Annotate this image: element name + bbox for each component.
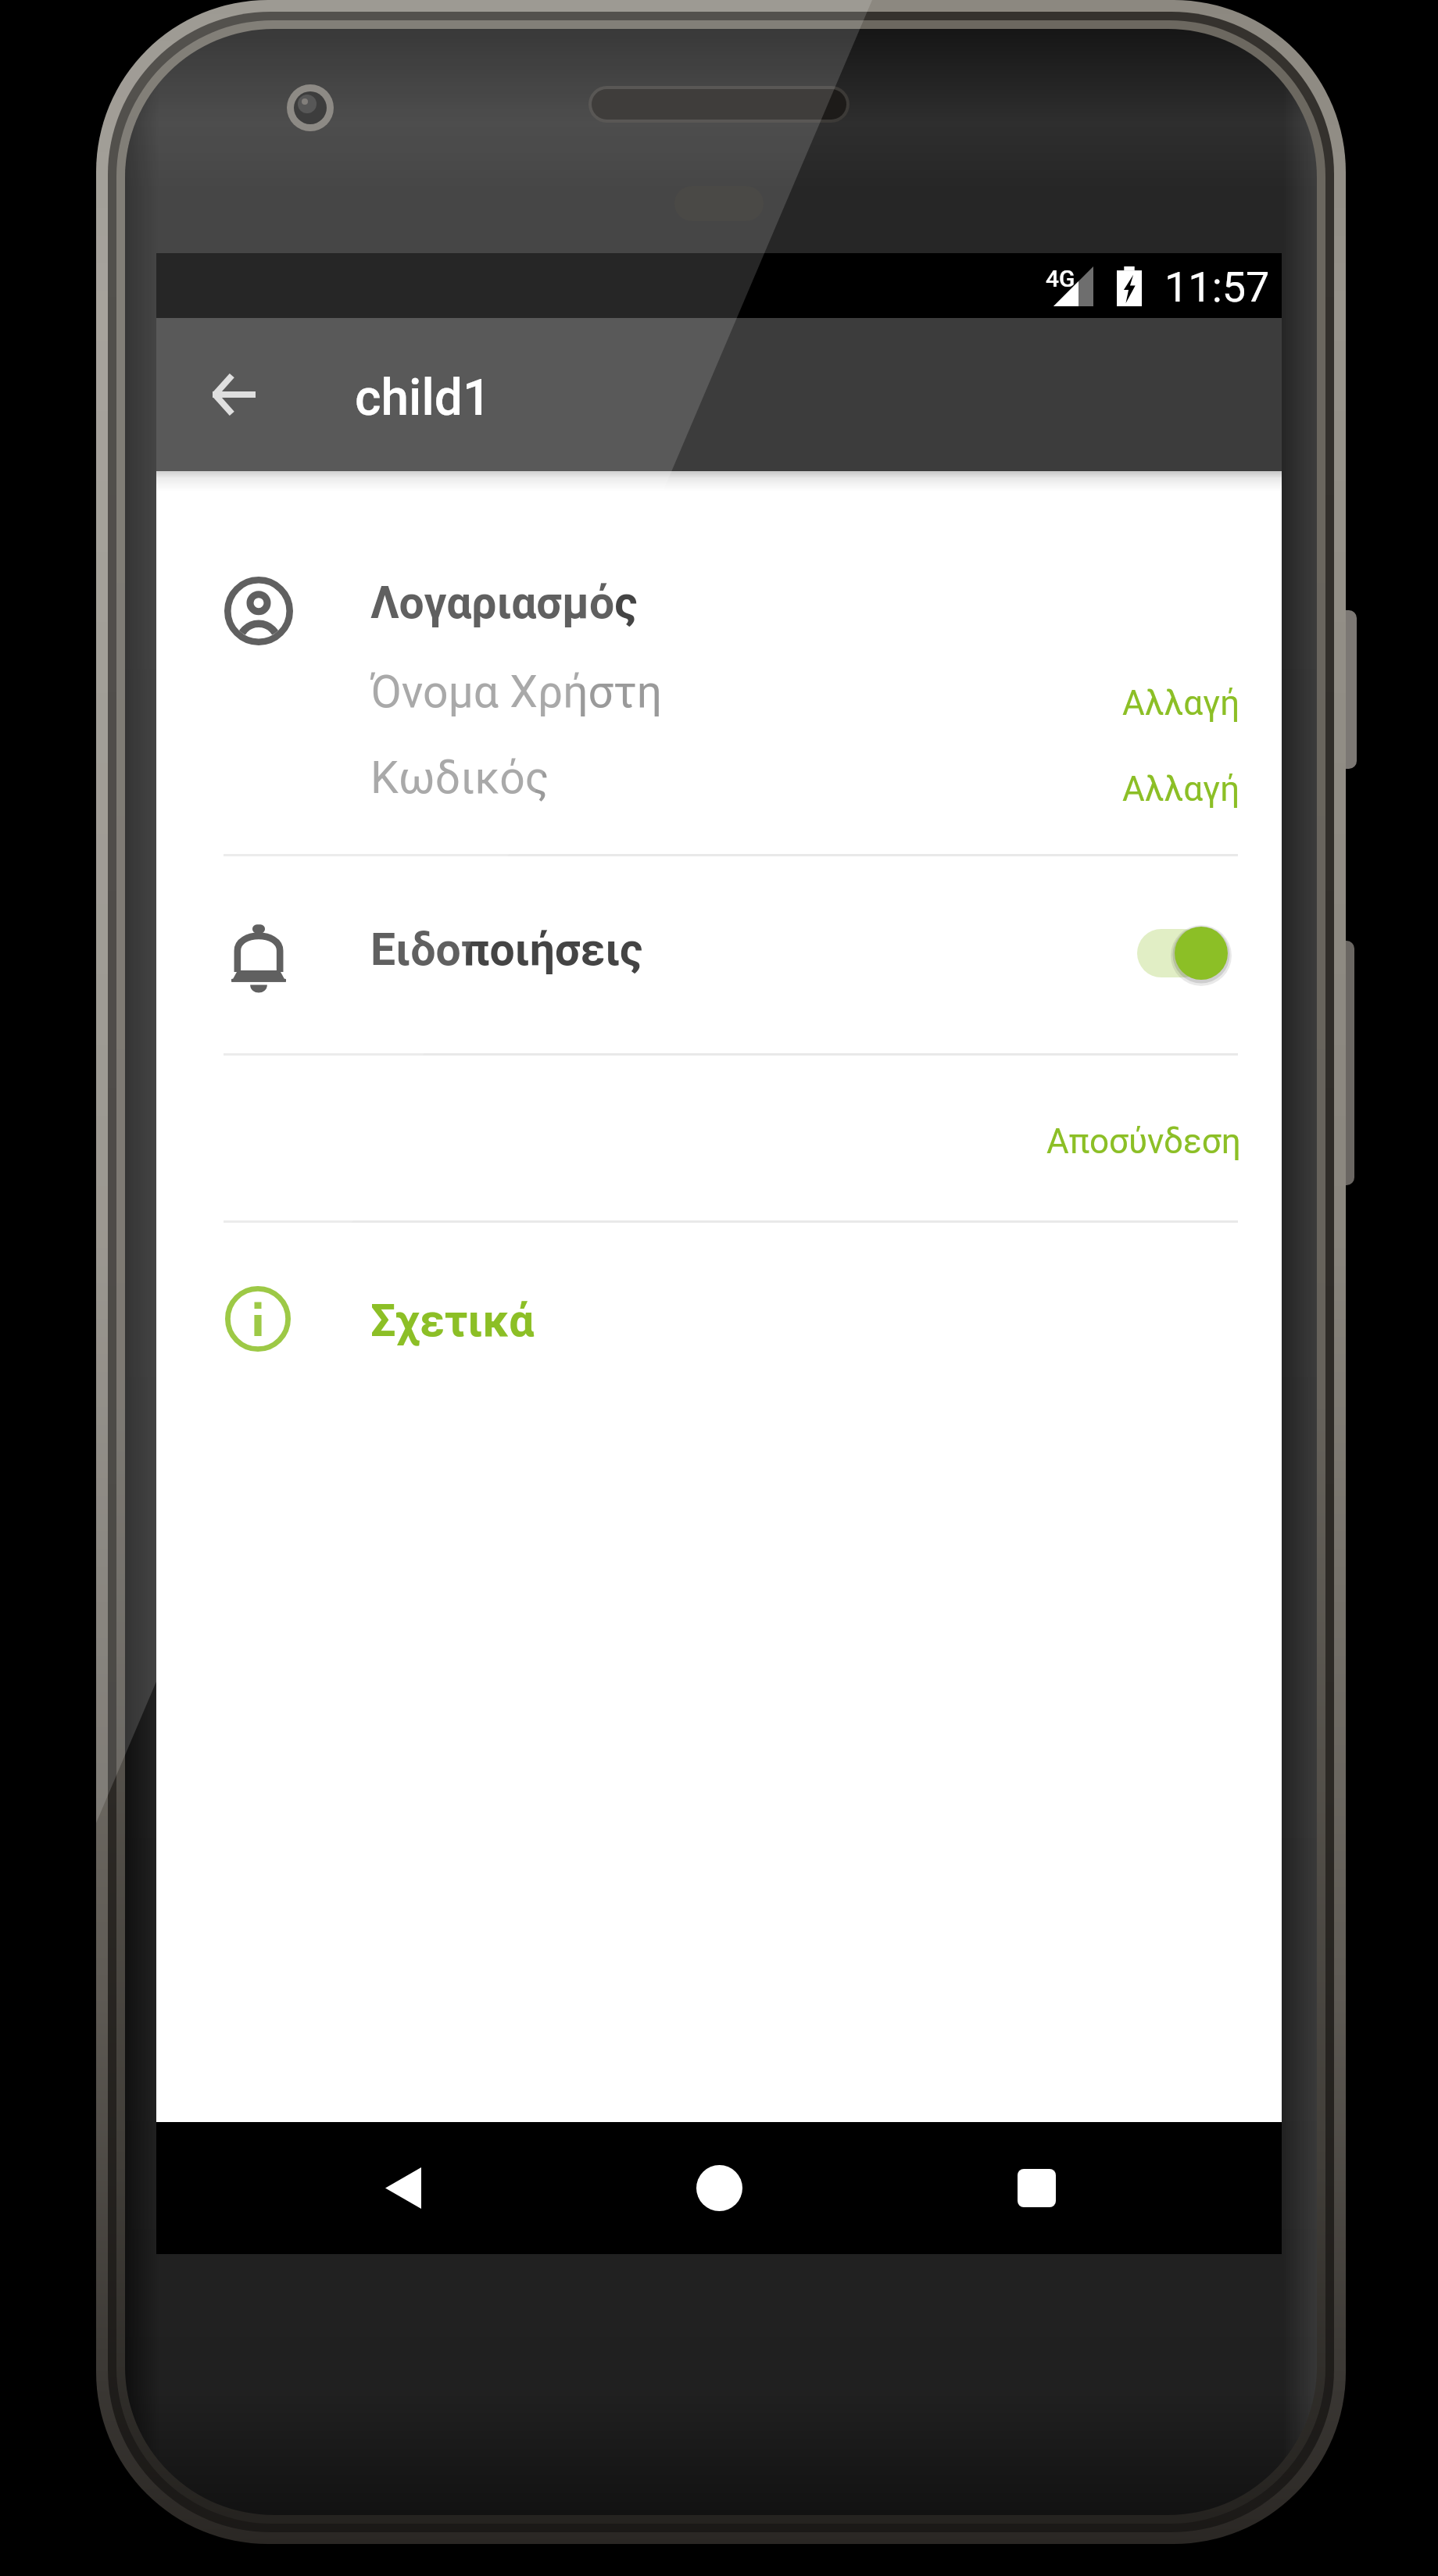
staticText: Κωδικός xyxy=(370,752,549,804)
staticText: Ειδοποιήσεις xyxy=(370,924,643,976)
button[interactable] xyxy=(156,547,1282,854)
button[interactable]: Back xyxy=(277,2122,528,2254)
button[interactable]: Recents xyxy=(911,2122,1161,2254)
staticText: Όνομα Χρήστη xyxy=(370,666,663,718)
staticText: Αλλαγή xyxy=(1122,683,1240,723)
button[interactable]: Notifications toggle xyxy=(1121,911,1243,995)
button[interactable] xyxy=(156,1220,1282,1406)
staticText: child1 xyxy=(355,369,492,427)
staticText: Αποσύνδεση xyxy=(1046,1121,1241,1162)
button[interactable]: Home xyxy=(594,2122,844,2254)
staticText: Σχετικά xyxy=(370,1295,535,1347)
staticText: Αλλαγή xyxy=(1122,769,1240,809)
staticText: 4G xyxy=(1046,265,1075,292)
button[interactable]: Back xyxy=(189,351,277,438)
staticText: 11:57 xyxy=(1164,263,1270,312)
staticText: Λογαριασμός xyxy=(370,577,638,629)
button[interactable]: Αλλαγή xyxy=(1094,661,1250,742)
button[interactable] xyxy=(156,854,1282,1053)
button[interactable]: Αποσύνδεση xyxy=(1032,1109,1250,1195)
button[interactable]: Αλλαγή xyxy=(1094,747,1250,828)
